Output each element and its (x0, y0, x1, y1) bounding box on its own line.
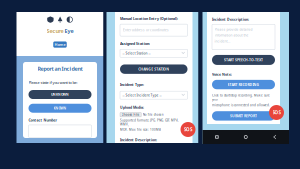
staticText: Secure (46, 27, 63, 34)
staticText: Supported formats: JPG, PNG, GIF, MP4, W… (120, 118, 179, 126)
staticText: -- Select Station -- (122, 51, 150, 55)
staticText: Voice Note: (212, 72, 232, 77)
staticText: No file chosen (143, 113, 164, 117)
staticText: MOV. Max file size: 100MB (120, 128, 161, 132)
staticText: CHANGE STATION (138, 67, 169, 71)
staticText: Report an Incident (37, 65, 82, 72)
staticText: Eye (63, 27, 73, 34)
button[interactable]: START SPEECH-TO-TEXT (212, 55, 275, 65)
button[interactable]: Recents (215, 135, 219, 139)
button[interactable]: Home (244, 135, 248, 139)
staticText: Enter address or coordinates (123, 28, 169, 32)
button[interactable]: SOS (269, 105, 284, 120)
button[interactable]: UNKNOWN (28, 90, 91, 99)
button[interactable]: SOS (180, 122, 195, 137)
staticText: Contact Number (28, 118, 57, 122)
staticText: Incident Type: (120, 82, 144, 87)
button[interactable]: CHANGE STATION (120, 64, 187, 74)
staticText: SOS (184, 126, 192, 133)
button[interactable]: -- Select Station -- (120, 49, 187, 57)
staticText: Upload Media: (120, 105, 144, 110)
staticText: Please state if you want to be: (28, 80, 77, 85)
staticText: Click to start/stop recording. Make sure… (212, 93, 270, 101)
staticText: -- Select Incident Type -- (122, 93, 161, 97)
staticText: Incident Description: (120, 138, 157, 142)
button[interactable]: Home (53, 41, 67, 48)
staticText: Please provide detailed (214, 27, 252, 32)
staticText: Choose File (122, 113, 140, 117)
staticText: Assigned Station: (120, 41, 150, 46)
button[interactable]: -- Select Incident Type -- (120, 91, 187, 99)
staticText: UNKNOWN (51, 92, 69, 97)
button[interactable]: KNOWN (28, 104, 91, 113)
button[interactable]: Back (273, 135, 276, 139)
staticText: SOS (272, 109, 280, 116)
staticText: microphone is connected and allowed. (212, 103, 270, 107)
staticText: information about the (214, 33, 248, 38)
staticText: incident... (214, 39, 230, 43)
button[interactable]: SUBMIT REPORT (212, 111, 275, 121)
button[interactable]: START RECORDING (212, 80, 275, 89)
staticText: Manual Location Entry (Optional): (120, 16, 178, 21)
staticText: Home (54, 42, 65, 47)
button[interactable]: Choose File (120, 112, 141, 117)
staticText: SUBMIT REPORT (230, 114, 257, 118)
staticText: KNOWN (53, 106, 66, 110)
staticText: START RECORDING (227, 82, 259, 87)
staticText: START SPEECH-TO-TEXT (224, 58, 263, 62)
staticText: Incident Description: (212, 17, 249, 22)
